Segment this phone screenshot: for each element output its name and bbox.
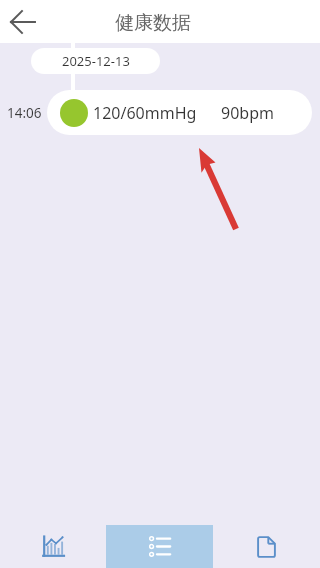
staticText: 90bpm: [221, 102, 274, 124]
button[interactable]: Back: [6, 5, 40, 39]
button[interactable]: 120/60mmHg: [47, 90, 312, 135]
staticText: 14:06: [7, 104, 47, 122]
button[interactable]: 2025-12-13: [31, 48, 160, 74]
button[interactable]: Statistics: [0, 525, 106, 568]
staticText: 2025-12-13: [62, 52, 130, 70]
staticText: 120/60mmHg: [93, 102, 197, 124]
button[interactable]: Records: [106, 525, 213, 568]
button[interactable]: Reports: [213, 525, 320, 568]
staticText: 健康数据: [115, 11, 191, 35]
